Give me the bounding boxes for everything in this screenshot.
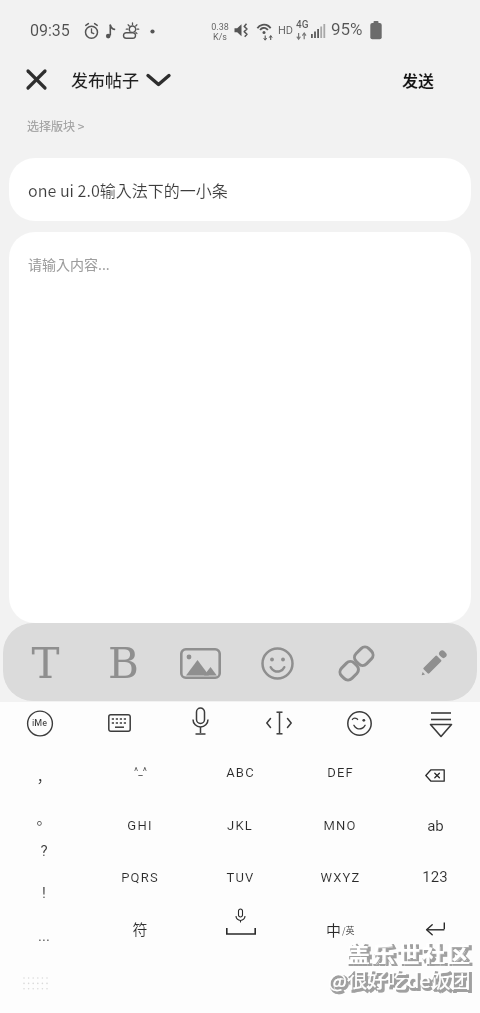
staticText: ... [38,927,50,945]
staticText: 盖乐世社区 [346,936,471,964]
staticText: 95% [331,19,363,39]
staticText: ab [427,817,444,835]
staticText: 发送 [402,68,435,91]
button[interactable]: one ui 2.0输入法下的一小条 [9,158,471,221]
staticText: PQRS [121,870,159,885]
staticText: GHI [127,818,153,833]
button[interactable] [429,710,453,738]
button[interactable] [226,908,256,936]
button[interactable] [336,643,377,684]
staticText: DEF [327,765,354,780]
button[interactable]: TUV [194,852,286,902]
button[interactable]: GHI [94,800,186,850]
staticText: @很好吃de饭团 [328,965,471,993]
button[interactable]: B [77,638,169,688]
staticText: MNO [323,818,357,833]
button[interactable]: ， [0,751,90,801]
button[interactable] [26,69,47,90]
staticText: ^_^ [134,766,147,778]
staticText: HD [278,24,294,37]
staticText: ABC [226,765,255,780]
button[interactable]: 符 [94,904,186,954]
staticText: 中 [326,919,342,941]
button[interactable]: 123 [389,852,480,902]
button[interactable] [180,648,221,679]
staticText: 0.38 K/s [211,22,229,42]
button[interactable]: ... [0,911,90,961]
button[interactable] [425,921,446,936]
staticText: 4G [296,19,309,31]
button[interactable] [146,73,171,87]
staticText: JKL [227,818,253,833]
button[interactable]: T [0,638,91,688]
button[interactable] [266,711,292,735]
staticText: 选择版块 > [27,117,85,134]
staticText: ! [42,884,46,902]
button[interactable]: ^_^ [94,747,186,797]
button[interactable]: PQRS [94,852,186,902]
staticText: @很好吃de饭团 [330,967,473,995]
staticText: iMe [32,718,48,729]
staticText: one ui 2.0输入法下的一小条 [28,178,228,201]
button[interactable] [347,711,372,736]
staticText: TUV [226,870,255,885]
button[interactable]: 发送 [397,66,439,92]
staticText: B [108,639,139,688]
button[interactable]: JKL [194,800,286,850]
button[interactable]: ? [0,826,90,876]
button[interactable]: MNO [294,800,386,850]
button[interactable] [261,647,294,680]
staticText: ， [36,765,52,787]
button[interactable] [27,710,53,737]
button[interactable]: ABC [194,747,286,797]
staticText: T [31,639,60,688]
button[interactable] [425,769,445,782]
button[interactable]: ab [389,801,480,851]
button[interactable] [192,707,209,738]
button[interactable]: 发布帖子 [71,66,139,92]
staticText: 盖乐世社区 [348,938,473,966]
staticText: 请输入内容... [28,254,110,274]
staticText: 发布帖子 [71,67,139,92]
button[interactable]: 。 [0,793,90,843]
staticText: 符 [132,918,148,940]
staticText: 。 [36,807,52,829]
staticText: ? [40,842,48,860]
button[interactable]: DEF [294,747,386,797]
staticText: /英 [342,924,355,937]
staticText: 123 [422,868,448,886]
staticText: WXYZ [320,870,361,885]
button[interactable]: ! [0,868,90,918]
button[interactable] [416,646,451,681]
button[interactable]: 中 [315,916,365,944]
staticText: 09:35 [30,21,70,40]
button[interactable] [108,714,131,732]
button[interactable]: 选择版块 > [27,114,147,136]
button[interactable]: WXYZ [294,852,386,902]
button[interactable]: 请输入内容... [9,232,471,623]
